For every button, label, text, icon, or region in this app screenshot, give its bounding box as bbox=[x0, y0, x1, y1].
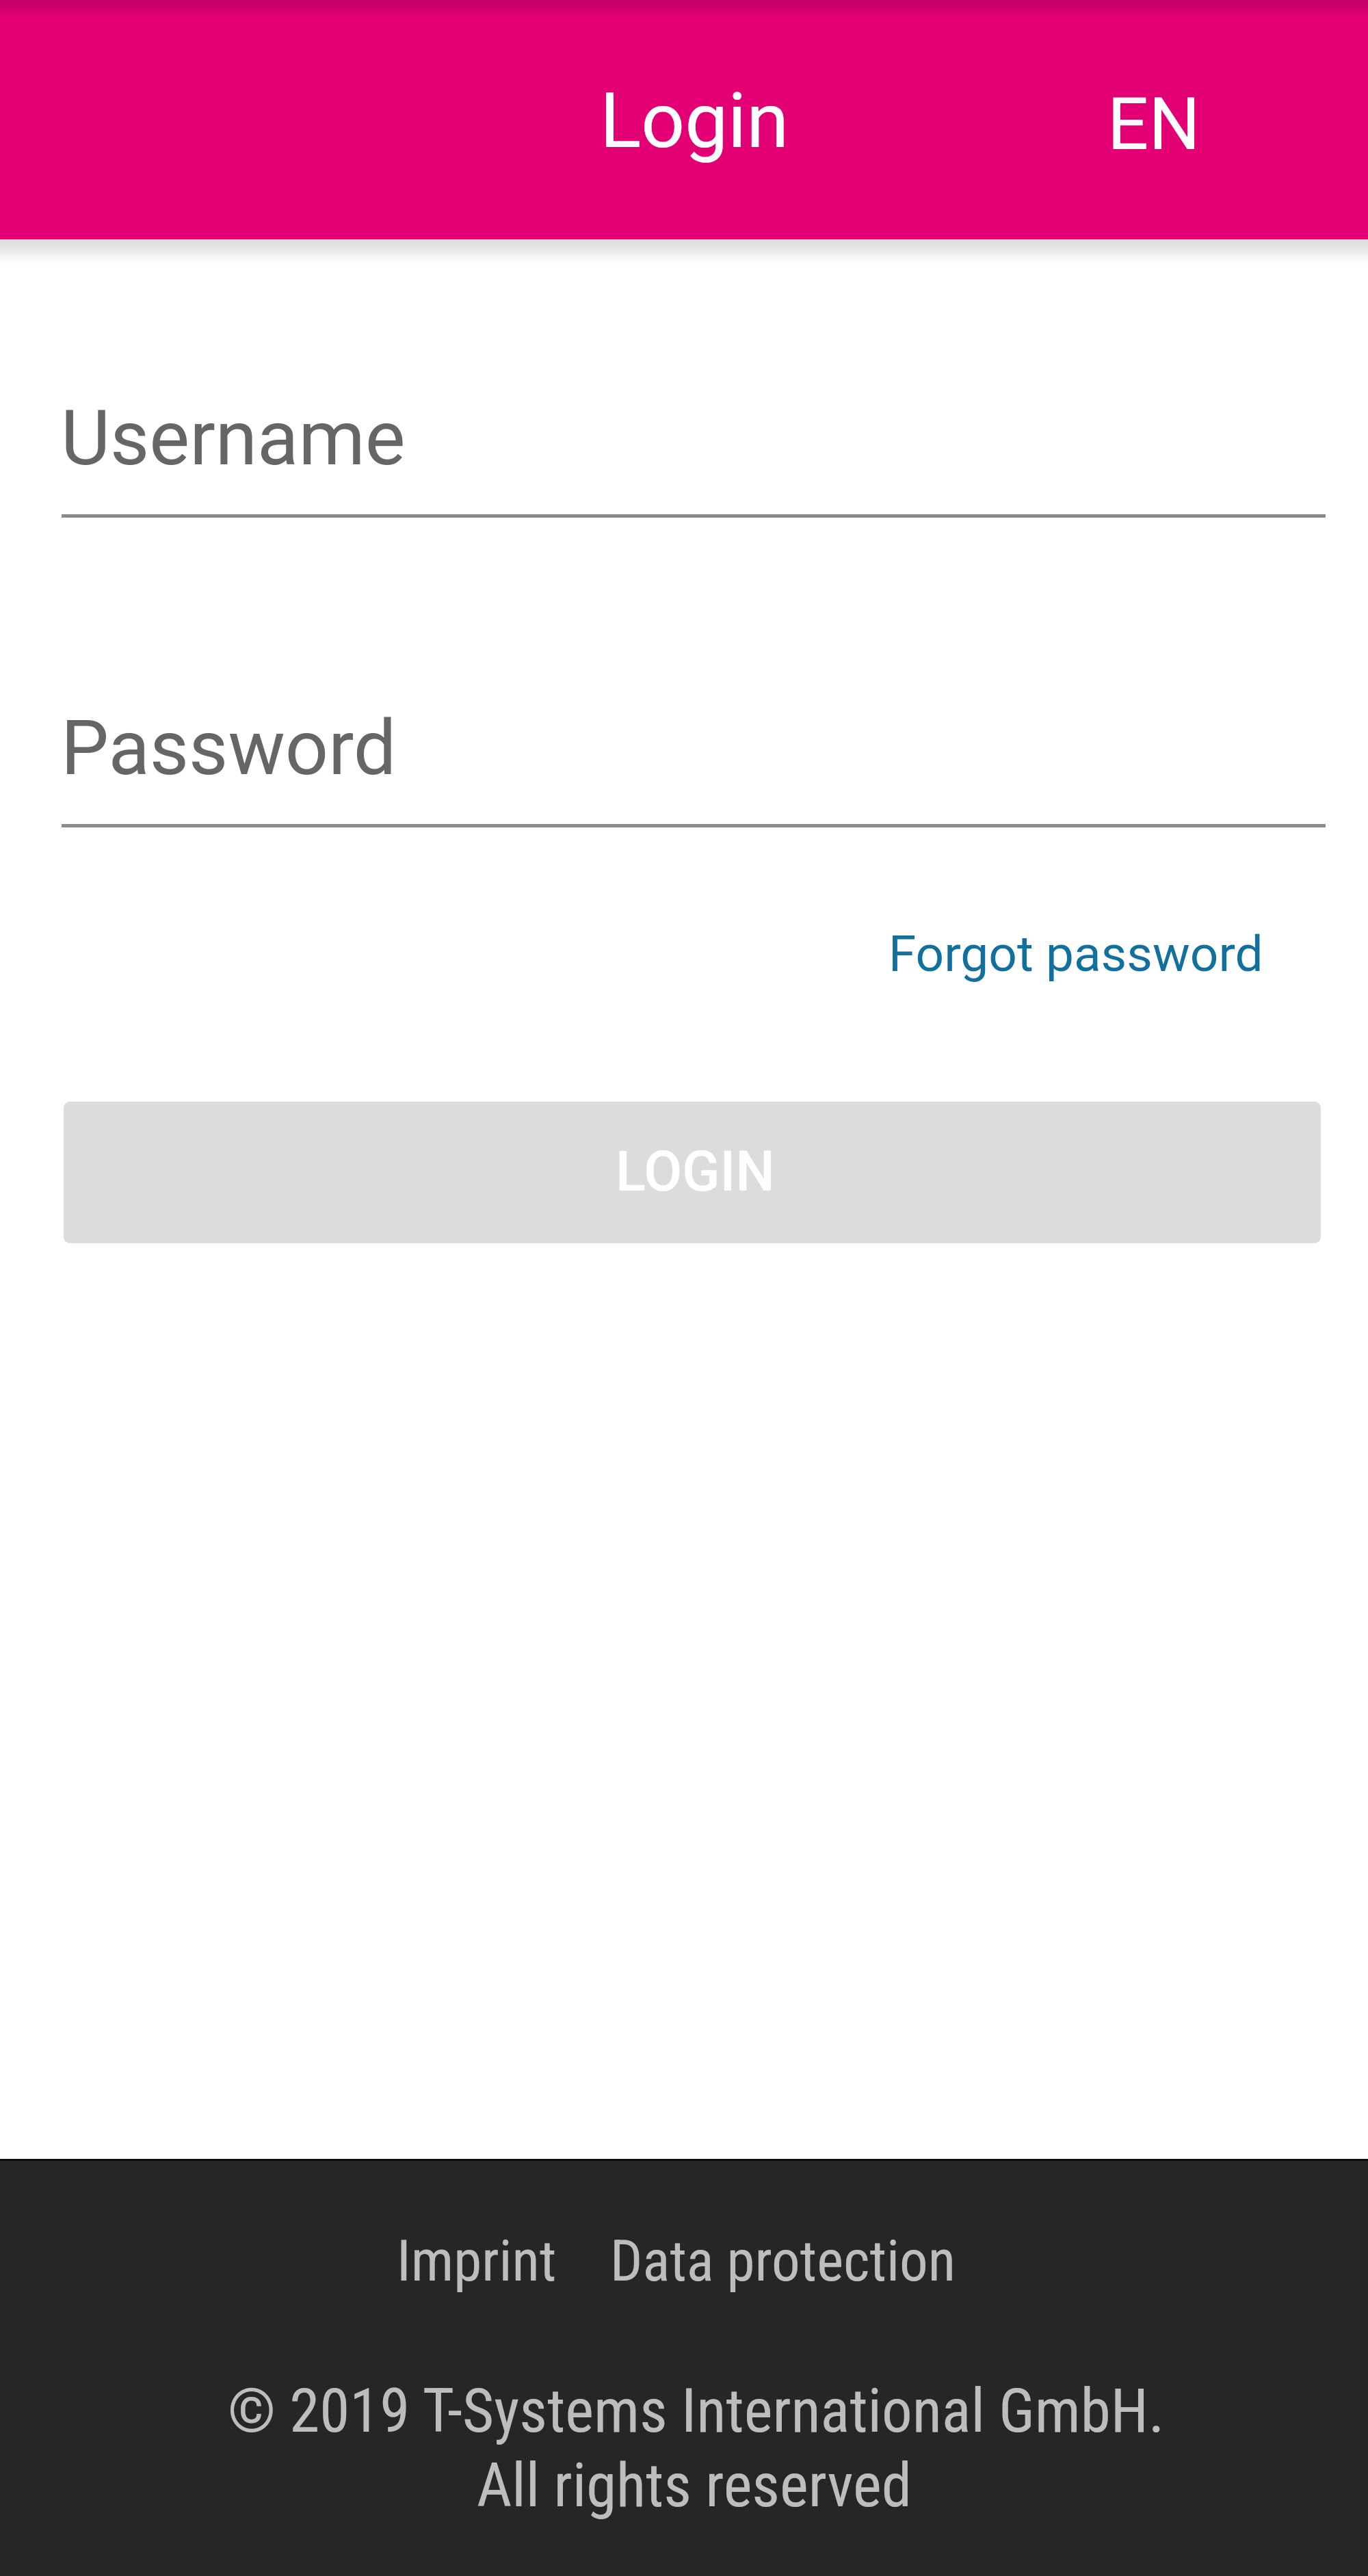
staticText: Forgot password bbox=[889, 925, 1263, 983]
button[interactable]: Change language, English bbox=[1066, 41, 1241, 208]
staticText: Login bbox=[600, 76, 789, 165]
button[interactable]: LOGIN bbox=[64, 1102, 1321, 1243]
staticText: LOGIN bbox=[616, 1139, 775, 1204]
staticText: © 2019 T-Systems International GmbH. bbox=[228, 2375, 1165, 2446]
staticText: Username bbox=[61, 394, 406, 483]
staticText: Password bbox=[61, 704, 397, 793]
button[interactable]: Forgot password bbox=[865, 901, 1287, 1007]
button[interactable]: Imprint bbox=[389, 2220, 565, 2302]
button[interactable]: Data protection bbox=[602, 2220, 964, 2302]
staticText: EN bbox=[1107, 82, 1200, 167]
button[interactable]: Username bbox=[62, 367, 1326, 518]
staticText: Data protection bbox=[610, 2228, 956, 2294]
button[interactable]: Password bbox=[62, 676, 1326, 828]
staticText: All rights reserved bbox=[477, 2449, 912, 2521]
staticText: Imprint bbox=[397, 2228, 557, 2294]
